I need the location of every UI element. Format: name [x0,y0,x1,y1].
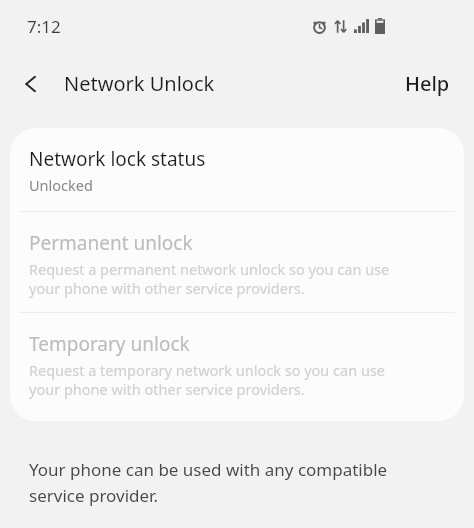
button[interactable]: Temporary unlock [10,313,464,413]
button[interactable]: Permanent unlock [10,212,464,312]
staticText: Request a permanent network unlock so yo… [29,259,390,298]
staticText: Temporary unlock [29,331,190,357]
button[interactable]: Network lock status [10,128,464,211]
staticText: Help [405,70,450,97]
staticText: Network Unlock [64,70,215,97]
staticText: 7:12 [27,15,61,38]
button[interactable]: Help [381,60,474,107]
staticText: Request a temporary network unlock so yo… [29,360,386,399]
staticText: Network lock status [29,146,206,172]
staticText: Your phone can be used with any compatib… [29,458,388,507]
button[interactable]: Back [0,64,48,104]
staticText: Unlocked [29,175,93,195]
staticText: Permanent unlock [29,230,193,256]
